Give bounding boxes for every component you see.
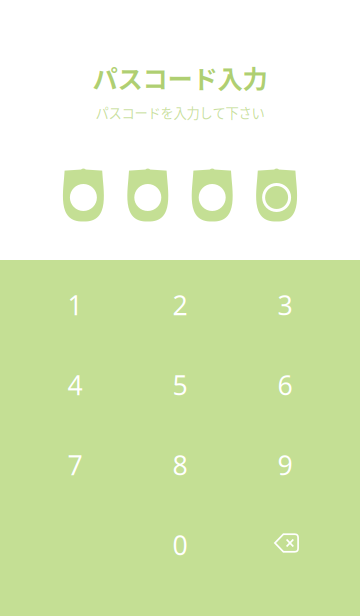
button[interactable]: 9 — [232, 425, 337, 505]
staticText: 3 — [277, 287, 292, 323]
staticText: 9 — [277, 447, 292, 483]
staticText: 6 — [277, 367, 292, 403]
button[interactable]: 7 — [22, 425, 127, 505]
staticText: 1 — [67, 287, 82, 323]
button[interactable]: 8 — [127, 425, 232, 505]
staticText: 8 — [172, 447, 187, 483]
staticText: 5 — [172, 367, 187, 403]
button[interactable]: 0 — [127, 505, 232, 585]
staticText: パスコードを入力して下さい — [95, 103, 264, 122]
button[interactable]: 1 — [22, 265, 127, 345]
button[interactable]: Delete — [232, 505, 337, 585]
button[interactable]: 4 — [22, 345, 127, 425]
button[interactable]: 6 — [232, 345, 337, 425]
staticText: 7 — [67, 447, 82, 483]
staticText: パスコード入力 — [92, 59, 267, 96]
button[interactable]: 3 — [232, 265, 337, 345]
button[interactable]: 5 — [127, 345, 232, 425]
staticText: 4 — [67, 367, 82, 403]
button[interactable]: 2 — [127, 265, 232, 345]
staticText: 2 — [172, 287, 187, 323]
staticText: 0 — [172, 527, 187, 563]
